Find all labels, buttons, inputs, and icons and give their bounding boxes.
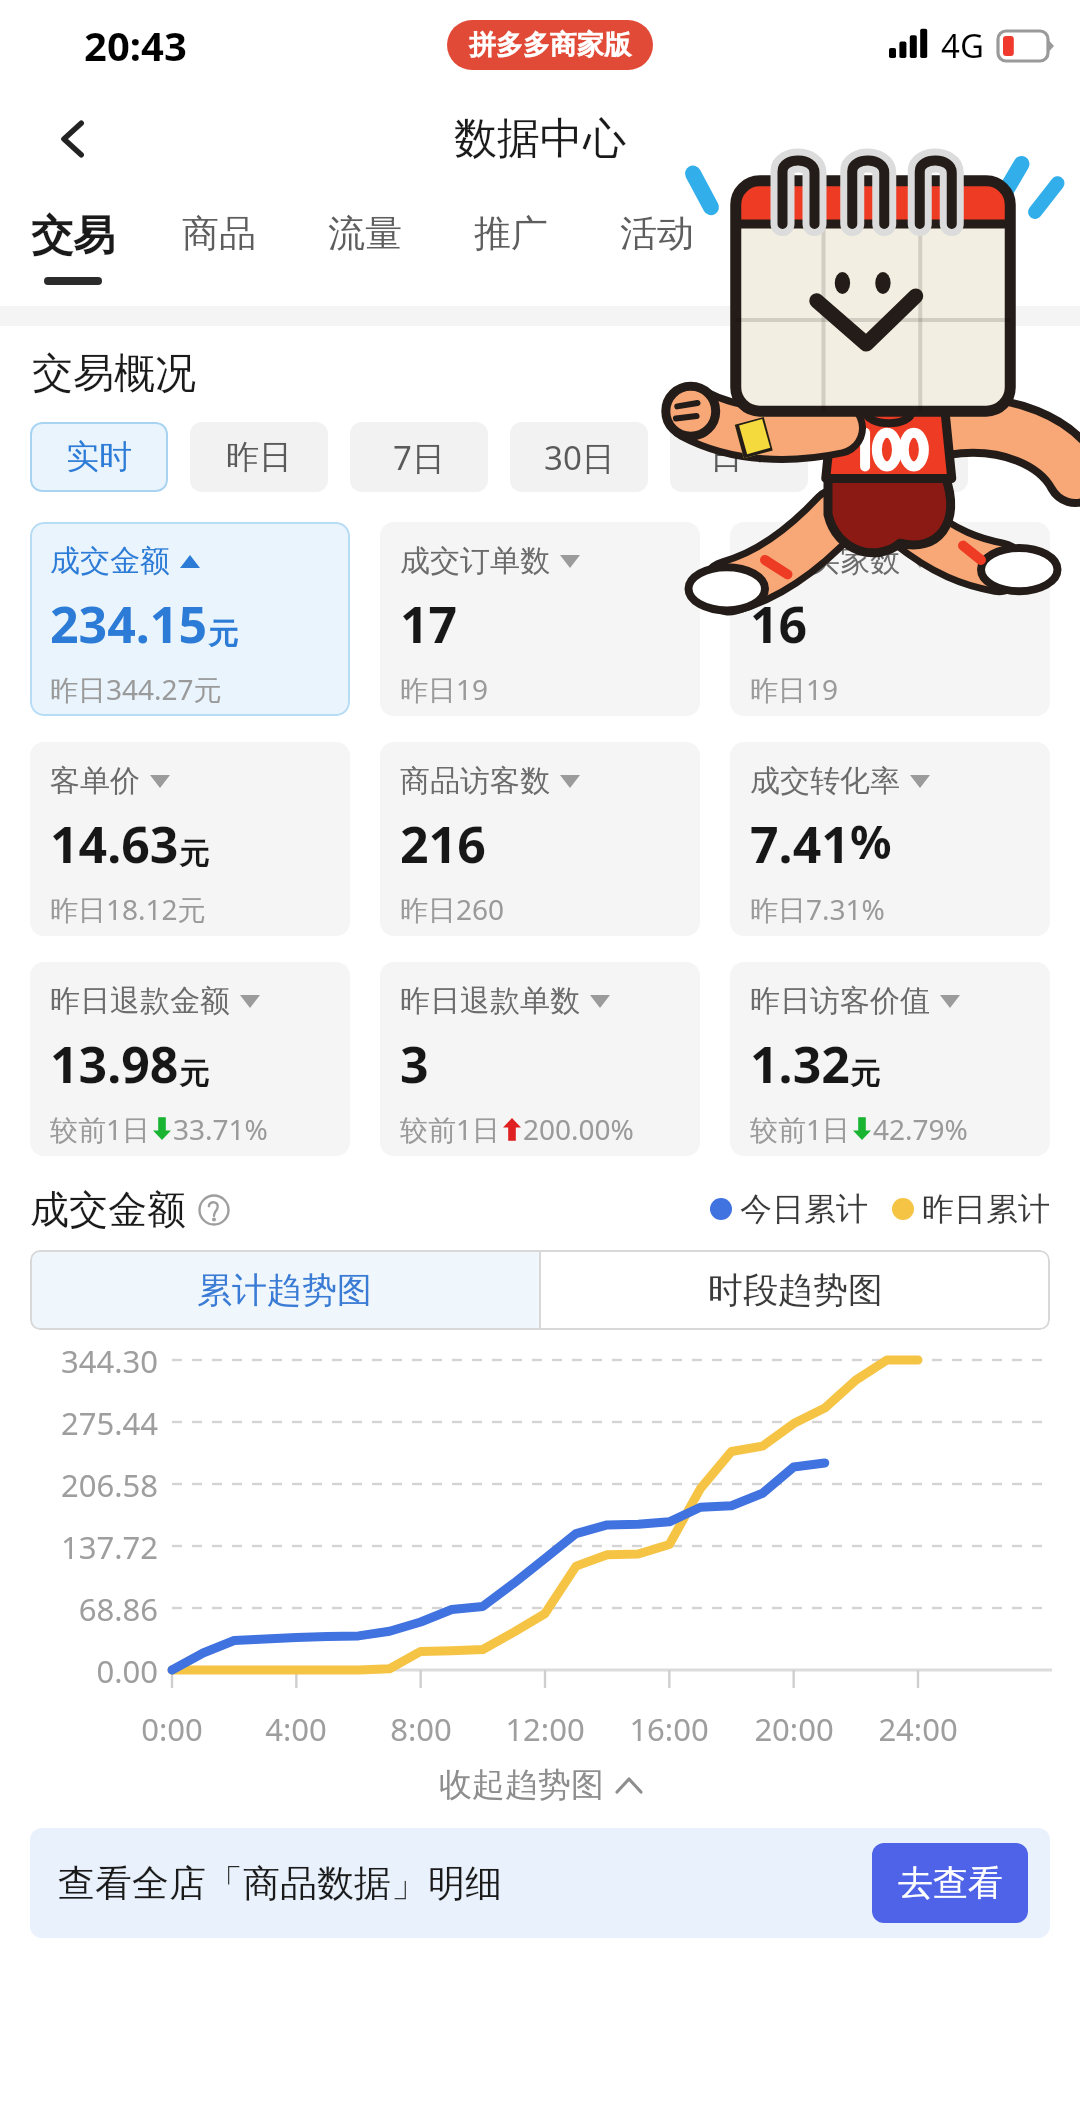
staticText: 商品 [182,210,256,257]
staticText: 较前1日 [400,1110,501,1148]
button[interactable]: 昨日退款单数 [380,962,700,1156]
button[interactable]: 活动 [584,188,730,306]
staticText: 344.30 [0,1340,158,1382]
staticText: 日 [710,436,743,478]
staticText: 4:00 [236,1708,356,1750]
staticText: 275.44 [0,1402,158,1444]
staticText: 20:43 [84,18,187,72]
staticText: 流量 [328,210,402,257]
staticText: 元 [179,835,209,873]
staticText: 成交订单数 [400,542,550,580]
staticText: 昨日累计 [922,1189,1050,1229]
button[interactable]: 推广 [438,188,584,306]
staticText: 昨日访客价值 [750,982,930,1020]
staticText: 活动 [620,210,694,257]
staticText: 17 [400,590,458,658]
staticText: 客单价 [50,762,140,800]
button[interactable]: 月 [830,422,968,492]
staticText: 234.15 [50,590,208,658]
button[interactable]: 日 [670,422,808,492]
button[interactable]: 30日 [510,422,648,492]
staticText: 收起趋势图 [439,1764,604,1806]
button[interactable]: 拼多多商家版 [447,20,653,70]
staticText: 成交买家数 [750,542,900,580]
staticText: 昨日19 [400,670,489,708]
button[interactable]: 成交转化率 [730,742,1050,936]
staticText: 昨日退款金额 [50,982,230,1020]
staticText: 累计趋势图 [197,1268,372,1312]
staticText: 4G [941,23,984,68]
staticText: 成交金额 [50,542,170,580]
staticText: 33.71% [173,1110,268,1148]
staticText: 时段趋势图 [708,1268,883,1312]
button[interactable]: 昨日访客价值 [730,962,1050,1156]
button[interactable]: 实时 [30,422,168,492]
button[interactable]: 时段趋势图 [541,1250,1050,1330]
staticText: 137.72 [0,1526,158,1568]
staticText: 交易概况 [32,348,196,400]
staticText: 元 [179,1055,209,1093]
staticText: 拼多多商家版 [469,28,631,62]
staticText: 1.32 [750,1030,850,1098]
button[interactable]: 流量 [292,188,438,306]
staticText: 20:00 [734,1708,854,1750]
staticText: 7日 [393,435,445,480]
staticText: 昨日18.12元 [50,890,206,928]
button[interactable]: 昨日退款金额 [30,962,350,1156]
staticText: 216 [400,810,486,878]
button[interactable]: 去查看 [872,1843,1028,1923]
button[interactable]: 售后 [730,188,876,306]
button[interactable]: 交易 [0,188,146,306]
staticText: 14.63 [50,810,179,878]
staticText: 成交金额 [30,1185,186,1234]
staticText: 月 [870,436,903,478]
staticText: 16:00 [609,1708,729,1750]
staticText: 数据中心 [454,112,626,166]
staticText: 较前1日 [750,1110,851,1148]
staticText: 24:00 [858,1708,978,1750]
staticText: 200.00% [523,1110,634,1148]
staticText: 昨日 [226,436,292,478]
staticText: 昨日260 [400,890,505,928]
button[interactable]: 成交买家数 [730,522,1050,716]
staticText: 去查看 [898,1861,1003,1905]
staticText: 30日 [544,435,615,480]
staticText: 68.86 [0,1588,158,1630]
staticText: 206.58 [0,1464,158,1506]
staticText: 0:00 [112,1708,232,1750]
button[interactable]: 成交金额 [30,522,350,716]
button[interactable]: 昨日 [190,422,328,492]
staticText: 昨日7.31% [750,890,885,928]
button[interactable]: 商品 [146,188,292,306]
button[interactable]: Back [42,107,106,171]
staticText: 售后 [766,210,840,257]
staticText: 7.41 [750,810,850,878]
staticText: 42.79% [873,1110,968,1148]
staticText: 昨日344.27元 [50,670,222,708]
button[interactable]: Help [198,1194,230,1226]
staticText: 元 [208,615,238,653]
staticText: 今日累计 [740,1189,868,1229]
button[interactable]: 查看全店「商品数据」明细 [30,1828,1050,1938]
staticText: 实时 [66,436,132,478]
button[interactable]: 客单价 [30,742,350,936]
button[interactable]: 7日 [350,422,488,492]
staticText: 查看全店「商品数据」明细 [58,1860,502,1907]
staticText: 13.98 [50,1030,179,1098]
button[interactable]: 商品访客数 [380,742,700,936]
button[interactable]: 累计趋势图 [30,1250,539,1330]
staticText: 3 [400,1030,429,1098]
button[interactable]: 成交订单数 [380,522,700,716]
staticText: 0.00 [0,1650,158,1692]
staticText: 元 [850,1055,880,1093]
staticText: 昨日19 [750,670,839,708]
staticText: 交易 [31,210,115,263]
staticText: 较前1日 [50,1110,151,1148]
staticText: 推广 [474,210,548,257]
staticText: 昨日退款单数 [400,982,580,1020]
staticText: 8:00 [361,1708,481,1750]
staticText: 16 [750,590,808,658]
button[interactable]: 收起趋势图 [439,1764,642,1806]
staticText: % [850,810,892,873]
staticText: 12:00 [485,1708,605,1750]
